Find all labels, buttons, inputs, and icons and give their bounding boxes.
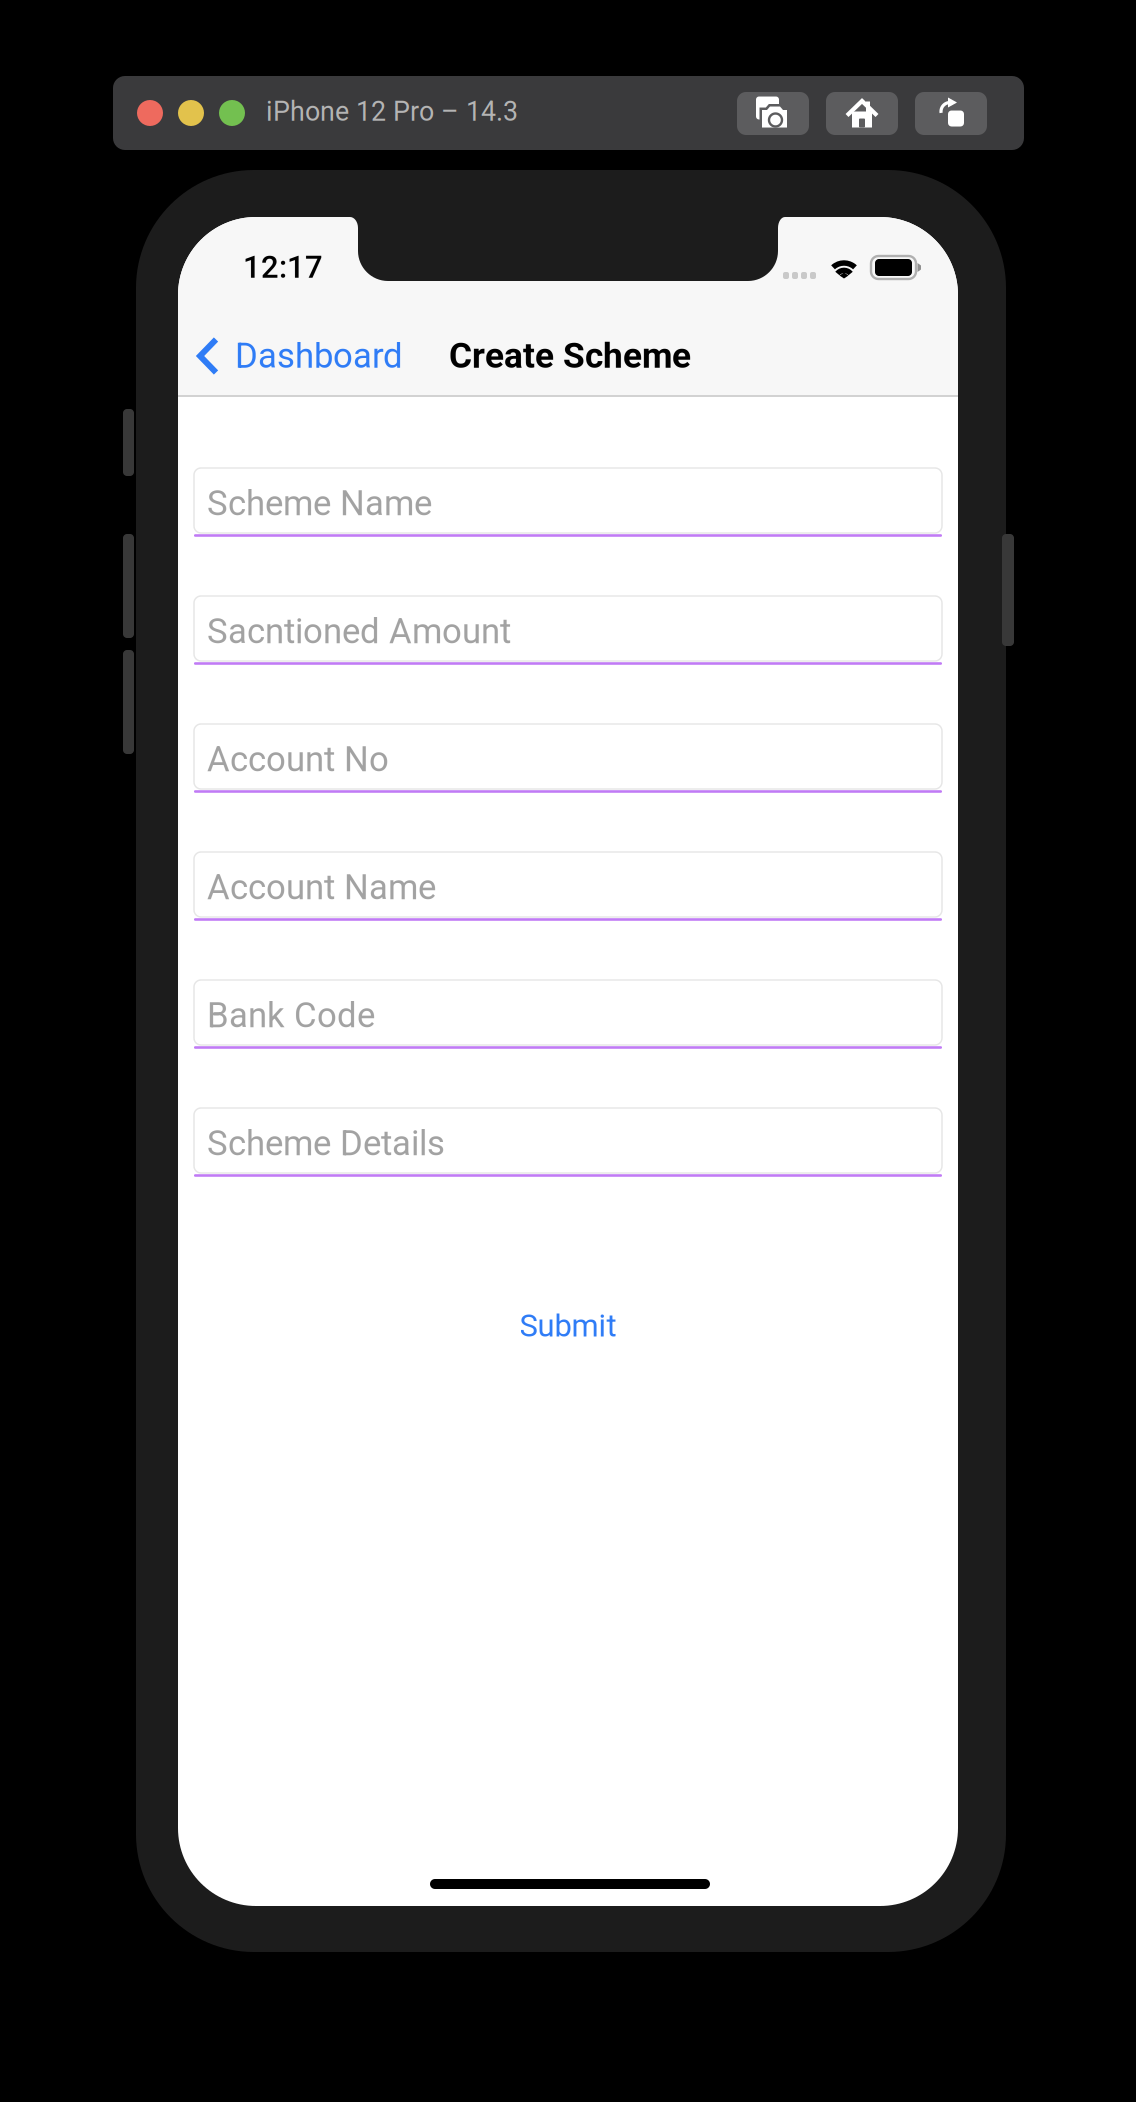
staticText: Account Name bbox=[207, 867, 436, 908]
button[interactable]: Close bbox=[137, 100, 163, 126]
button[interactable]: Submit bbox=[458, 1299, 678, 1353]
button[interactable]: Zoom bbox=[219, 100, 245, 126]
staticText: Scheme Details bbox=[207, 1123, 445, 1164]
button[interactable]: Scheme Name bbox=[194, 468, 942, 537]
staticText: Dashboard bbox=[235, 336, 403, 376]
button[interactable]: Rotate bbox=[915, 92, 987, 135]
button[interactable]: Account No bbox=[194, 724, 942, 793]
button[interactable]: Sacntioned Amount bbox=[194, 596, 942, 665]
staticText: Bank Code bbox=[207, 995, 375, 1036]
button[interactable]: Home bbox=[826, 92, 898, 135]
button[interactable]: Account Name bbox=[194, 852, 942, 921]
button[interactable]: Scheme Details bbox=[194, 1108, 942, 1177]
staticText: Create Scheme bbox=[449, 335, 691, 376]
button[interactable]: Minimize bbox=[178, 100, 204, 126]
staticText: iPhone 12 Pro – 14.3 bbox=[266, 96, 518, 127]
staticText: Scheme Name bbox=[207, 483, 432, 524]
button[interactable]: Bank Code bbox=[194, 980, 942, 1049]
button[interactable]: Dashboard bbox=[197, 328, 447, 384]
staticText: Account No bbox=[207, 739, 389, 780]
staticText: Submit bbox=[519, 1308, 616, 1344]
button[interactable]: Screenshot bbox=[737, 92, 809, 135]
staticText: 12:17 bbox=[243, 249, 323, 285]
staticText: Sacntioned Amount bbox=[207, 611, 511, 652]
